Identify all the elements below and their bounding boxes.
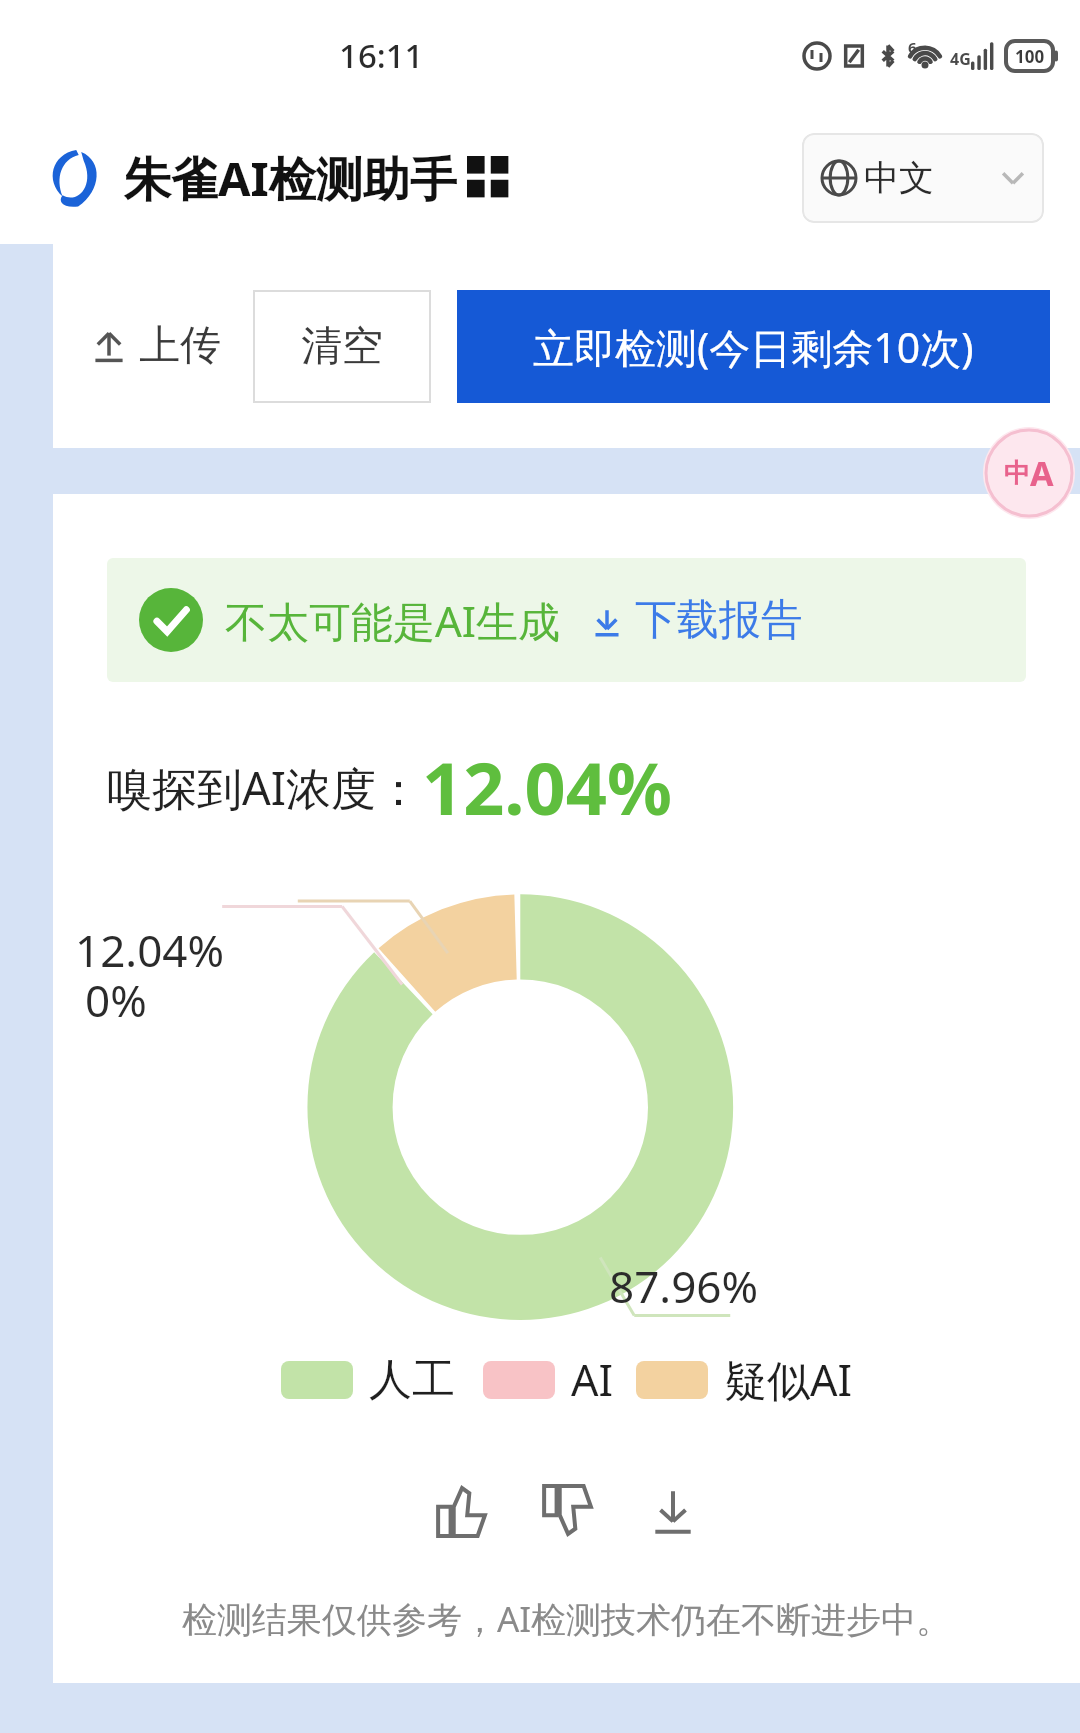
button[interactable]: Download [627, 1465, 719, 1557]
staticText: 人工 [369, 1353, 455, 1407]
button[interactable]: 立即检测(今日剩余10次) [457, 290, 1050, 403]
staticText: 嗅探到AI浓度： [107, 757, 422, 818]
button[interactable]: 疑似AI [636, 1350, 853, 1409]
staticText: 6 [908, 37, 917, 57]
staticText: AI [571, 1350, 614, 1409]
staticText: 不太可能是AI生成 [225, 592, 561, 649]
staticText: 16:11 [339, 33, 424, 78]
button[interactable]: 上传 [83, 310, 227, 382]
button[interactable]: Dislike [521, 1465, 613, 1557]
button[interactable]: 下载报告 [589, 594, 803, 647]
staticText: 立即检测(今日剩余10次) [533, 319, 974, 375]
staticText: 朱雀AI检测助手 [124, 146, 457, 210]
staticText: 87.96% [609, 1256, 759, 1316]
staticText: 清空 [301, 321, 383, 373]
button[interactable]: 清空 [253, 290, 431, 403]
staticText: 中文 [864, 156, 934, 200]
staticText: 下载报告 [635, 594, 803, 647]
button[interactable]: 人工 [281, 1353, 455, 1407]
button[interactable]: Like [415, 1465, 507, 1557]
staticText: 100 [1015, 45, 1045, 68]
staticText: 检测结果仅供参考，AI检测技术仍在不断进步中。 [53, 1595, 1080, 1643]
staticText: 疑似AI [724, 1350, 853, 1409]
staticText: 12.04% [422, 738, 672, 836]
staticText: 12.04% [75, 920, 225, 980]
staticText: 中 [1004, 457, 1030, 490]
staticText: 上传 [139, 320, 221, 372]
button[interactable]: AI [483, 1350, 614, 1409]
button[interactable]: 不太可能是AI生成 [107, 558, 1026, 682]
staticText: 4G [950, 48, 971, 70]
button[interactable]: 中文 [802, 133, 1044, 223]
button[interactable]: Translate [983, 427, 1075, 519]
staticText: 0% [85, 970, 147, 1030]
staticText: A [1030, 450, 1054, 496]
